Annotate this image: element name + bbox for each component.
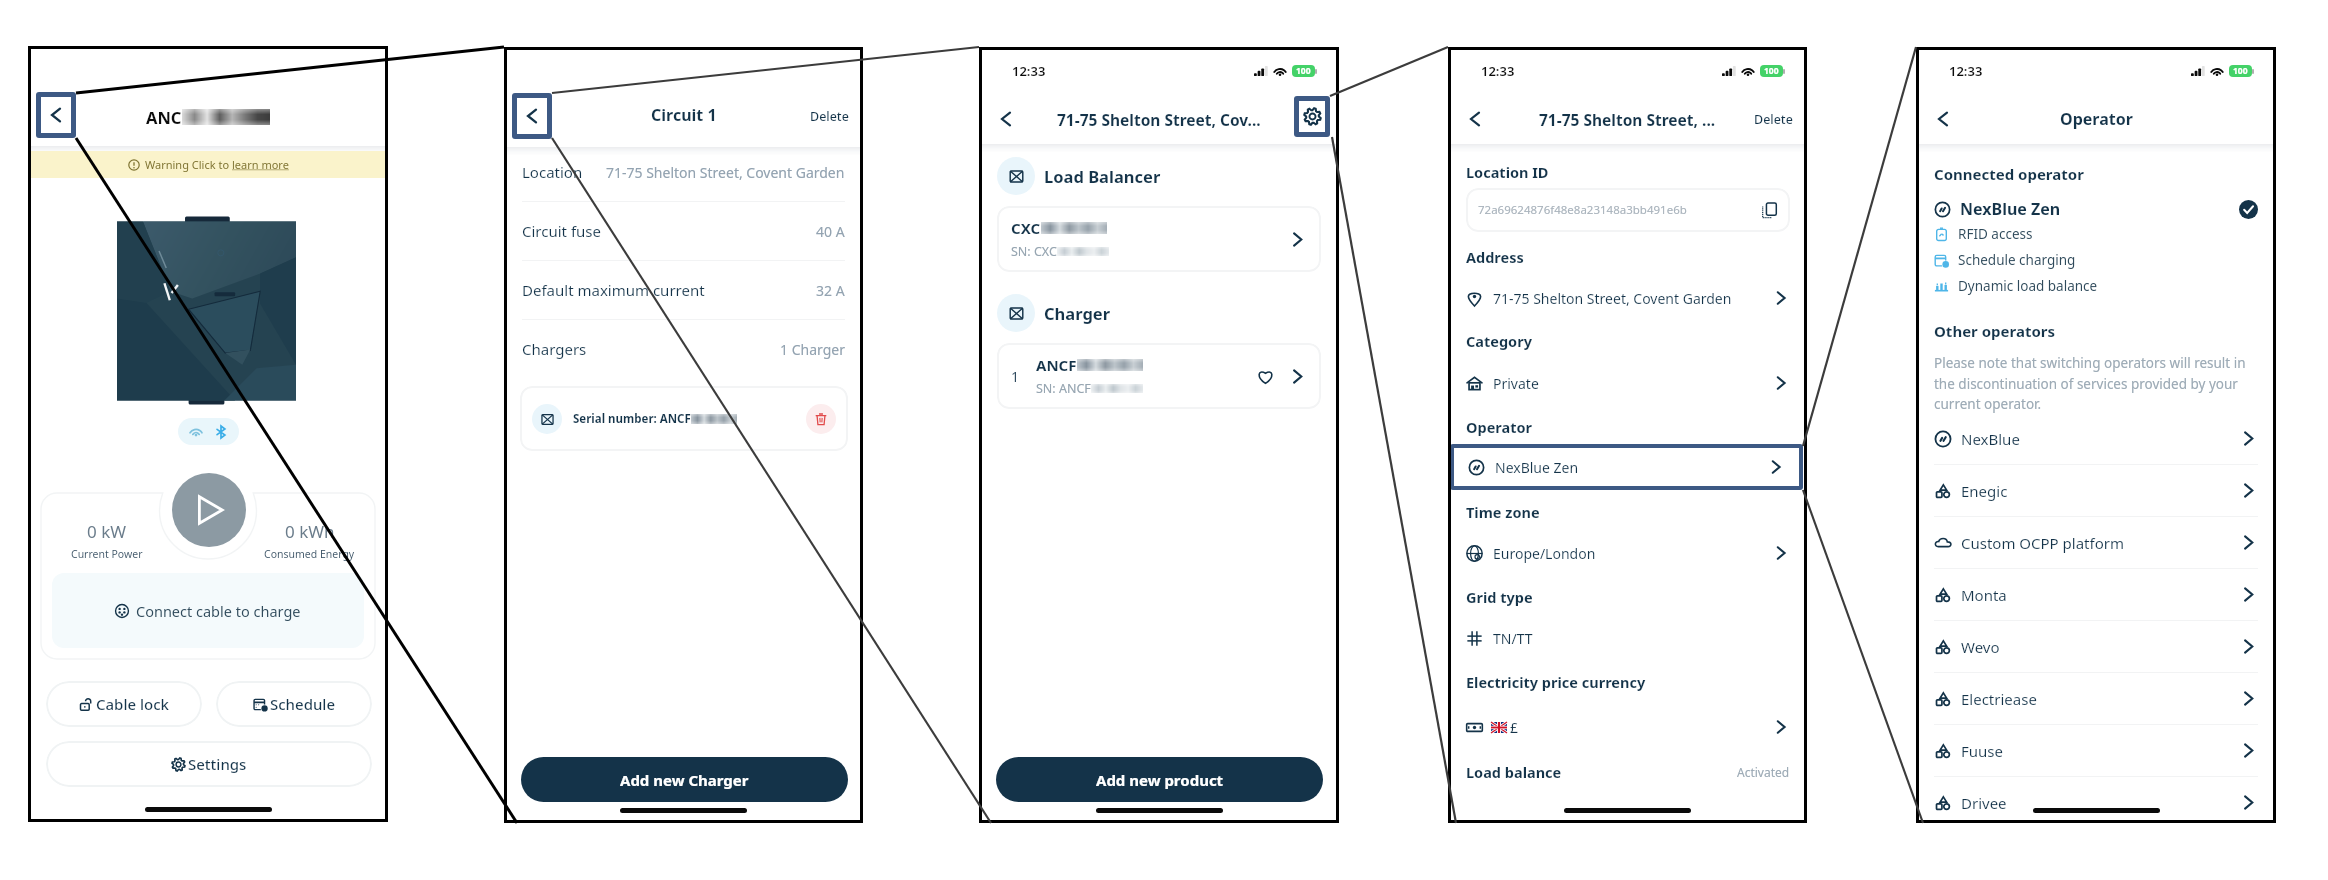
button[interactable]: Fuuse <box>1934 725 2258 776</box>
staticText: Charger <box>1044 302 1111 324</box>
staticText: RFID access <box>1958 225 2033 243</box>
button[interactable]: Europe/London <box>1466 538 1790 568</box>
button[interactable]: Delete <box>1754 111 1793 128</box>
button[interactable]: NexBlue Zen <box>1468 448 1785 486</box>
staticText: Consumed Energy <box>264 547 355 561</box>
staticText: Location <box>522 162 583 182</box>
staticText: 1 Charger <box>780 340 845 359</box>
staticText: ANC <box>146 106 182 128</box>
button[interactable]: 71-75 Shelton Street, Covent Garden <box>1466 283 1790 313</box>
staticText: Cable lock <box>96 694 169 714</box>
staticText: SN: ANCF <box>1036 380 1091 397</box>
staticText: Address <box>1466 247 1524 267</box>
staticText: Drivee <box>1961 793 2007 813</box>
button[interactable]: Private <box>1466 368 1790 398</box>
staticText: 71-75 Shelton Street, Cov... <box>1057 109 1261 130</box>
button[interactable]: Favourite <box>1254 365 1276 387</box>
staticText: NexBlue <box>1961 429 2020 449</box>
staticText: Load Balancer <box>1044 165 1161 187</box>
staticText: Custom OCPP platform <box>1961 533 2124 553</box>
button[interactable]: Monta <box>1934 569 2258 620</box>
button[interactable]: Custom OCPP platform <box>1934 517 2258 568</box>
staticText: Chargers <box>522 339 587 359</box>
button[interactable]: NexBlue Zen <box>1934 197 2258 221</box>
staticText: Dynamic load balance <box>1958 277 2098 295</box>
staticText: Add new Charger <box>620 770 749 790</box>
staticText: Other operators <box>1934 321 2056 341</box>
staticText: TN/TT <box>1493 629 1533 648</box>
button[interactable]: Serial number: ANCF <box>532 386 836 451</box>
staticText: NexBlue Zen <box>1960 198 2061 220</box>
button[interactable]: Circuit fuse <box>522 202 845 260</box>
button[interactable]: 72a69624876f48e8a23148a3bb491e6b <box>1478 188 1778 232</box>
staticText: Location ID <box>1466 162 1549 182</box>
button[interactable]: Add new Charger <box>521 757 848 802</box>
staticText: Fuuse <box>1961 741 2003 761</box>
button[interactable]: Connect cable to charge <box>52 573 364 648</box>
button[interactable]: NexBlue <box>1934 413 2258 464</box>
button[interactable]: Enegic <box>1934 465 2258 516</box>
staticText: 100 <box>1764 65 1779 77</box>
staticText: Connected operator <box>1934 164 2084 184</box>
staticText: 71-75 Shelton Street, ... <box>1539 109 1716 130</box>
staticText: Operator <box>1466 417 1533 437</box>
button[interactable]: Electriease <box>1934 673 2258 724</box>
staticText: Delete <box>810 108 849 125</box>
staticText: Circuit 1 <box>651 104 717 126</box>
staticText: Wevo <box>1961 637 2000 657</box>
button[interactable]: 1 <box>1011 343 1307 409</box>
staticText: Europe/London <box>1493 544 1596 563</box>
button[interactable]: Back <box>1462 106 1488 132</box>
staticText: 72a69624876f48e8a23148a3bb491e6b <box>1478 202 1687 218</box>
button[interactable]: Add new product <box>996 757 1323 802</box>
button[interactable]: Delete <box>806 404 836 434</box>
button[interactable]: Location <box>522 143 845 201</box>
button[interactable]: Cable lock <box>46 681 202 727</box>
button[interactable]: Warning Click to <box>28 151 388 178</box>
button[interactable]: £ <box>1466 711 1790 743</box>
staticText: Settings <box>188 754 247 774</box>
staticText: £ <box>1510 718 1519 737</box>
staticText: Warning Click to <box>145 157 232 172</box>
button[interactable]: Default maximum current <box>522 261 845 319</box>
staticText: Connect cable to charge <box>136 601 301 621</box>
button[interactable]: Settings <box>46 741 372 787</box>
staticText: 71-75 Shelton Street, Covent Garden <box>1493 289 1732 308</box>
staticText: Schedule <box>270 694 335 714</box>
button[interactable]: Chargers <box>522 320 845 378</box>
staticText: 0 kWh <box>285 520 335 543</box>
button[interactable]: TN/TT <box>1466 623 1790 653</box>
staticText: 100 <box>2233 65 2248 77</box>
button[interactable]: Back <box>1930 106 1956 132</box>
staticText: Circuit fuse <box>522 221 601 241</box>
button[interactable]: Back <box>517 98 547 134</box>
staticText: Default maximum current <box>522 280 705 300</box>
staticText: Grid type <box>1466 587 1533 607</box>
staticText: 100 <box>1296 65 1311 77</box>
staticText: ANCF <box>1036 355 1077 375</box>
staticText: learn more <box>232 157 289 172</box>
button[interactable]: Settings <box>1299 101 1325 132</box>
staticText: Please note that switching operators wil… <box>1934 354 2256 413</box>
staticText: Monta <box>1961 585 2007 605</box>
button[interactable]: Back <box>993 106 1019 132</box>
staticText: Current Power <box>71 547 143 561</box>
staticText: 32 A <box>816 281 845 300</box>
staticText: Electriease <box>1961 689 2037 709</box>
staticText: 12:33 <box>1481 62 1515 80</box>
staticText: Electricity price currency <box>1466 672 1646 692</box>
staticText: Activated <box>1737 764 1790 780</box>
button[interactable]: Schedule <box>216 681 372 727</box>
button[interactable]: Drivee <box>1934 777 2258 828</box>
button[interactable]: Start charging <box>172 473 246 547</box>
button[interactable]: CXC <box>1011 206 1307 272</box>
staticText: 12:33 <box>1012 62 1046 80</box>
button[interactable]: Wevo <box>1934 621 2258 672</box>
button[interactable]: Back <box>41 97 71 133</box>
staticText: SN: CXC <box>1011 243 1057 260</box>
staticText: Operator <box>2060 108 2133 130</box>
staticText: 40 A <box>816 222 845 241</box>
button[interactable]: Delete <box>810 108 849 125</box>
staticText: Enegic <box>1961 481 2008 501</box>
staticText: NexBlue Zen <box>1495 458 1579 477</box>
